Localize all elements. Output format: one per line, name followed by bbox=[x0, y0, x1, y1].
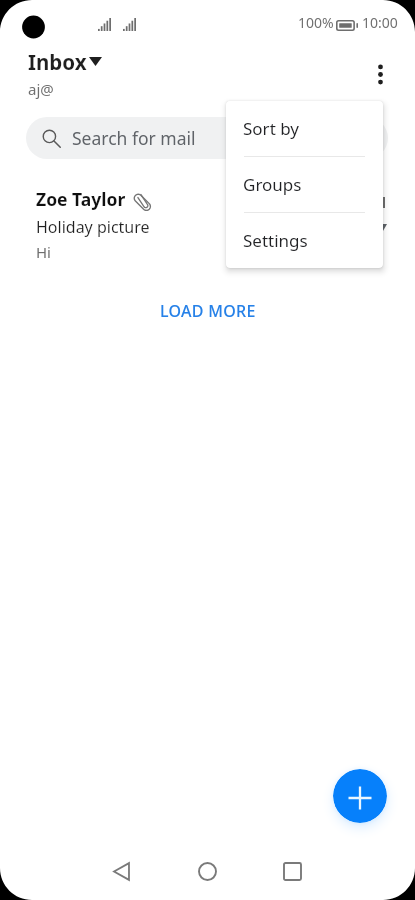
button[interactable]: Zoe Taylor bbox=[0, 181, 415, 270]
staticText: LOAD MORE bbox=[160, 300, 256, 322]
staticText: Settings bbox=[243, 229, 308, 252]
button[interactable]: Back bbox=[103, 853, 139, 889]
staticText: Groups bbox=[243, 173, 302, 196]
button[interactable]: LOAD MORE bbox=[142, 293, 274, 329]
button[interactable]: Settings bbox=[226, 213, 383, 268]
staticText: 100% bbox=[298, 13, 334, 32]
staticText: Sort by bbox=[243, 117, 299, 140]
staticText: Search for mail bbox=[72, 126, 196, 150]
button[interactable]: Home bbox=[189, 853, 225, 889]
button[interactable]: Recents bbox=[274, 853, 310, 889]
staticText: 10:00 bbox=[362, 13, 398, 32]
staticText: Hi bbox=[36, 242, 51, 262]
button[interactable]: More options bbox=[358, 52, 402, 96]
button[interactable]: Compose bbox=[333, 769, 387, 823]
staticText: Holiday picture bbox=[36, 216, 150, 238]
staticText: aj@ bbox=[28, 79, 54, 99]
button[interactable]: Sort by bbox=[226, 101, 383, 156]
button[interactable]: Groups bbox=[226, 157, 383, 212]
staticText: Inbox bbox=[28, 48, 87, 76]
staticText: Zoe Taylor bbox=[36, 187, 126, 211]
button[interactable]: Search for mail bbox=[26, 117, 388, 159]
